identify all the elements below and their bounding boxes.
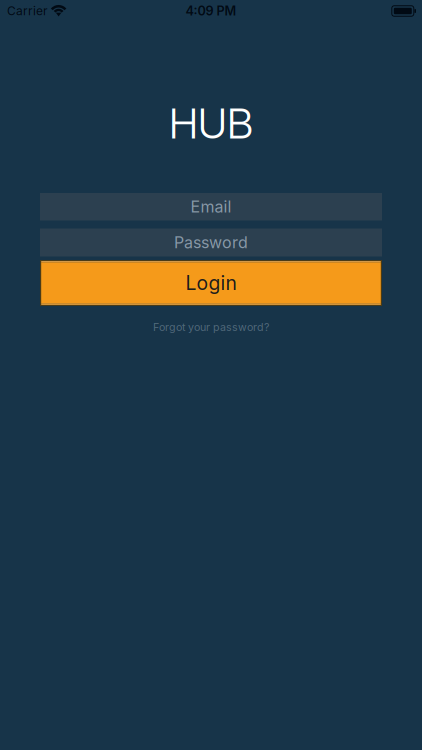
staticText: Login — [185, 271, 236, 295]
staticText: Forgot your password? — [153, 320, 269, 333]
staticText: Password — [174, 233, 248, 252]
button[interactable]: Password — [40, 228, 382, 256]
staticText: 4:09 PM — [185, 3, 236, 19]
staticText: Carrier — [7, 4, 48, 18]
staticText: HUB — [169, 98, 253, 148]
button[interactable]: Email — [40, 193, 382, 220]
button[interactable]: Forgot your password? — [40, 320, 382, 334]
button[interactable]: Login — [40, 260, 382, 306]
staticText: Email — [190, 197, 231, 216]
